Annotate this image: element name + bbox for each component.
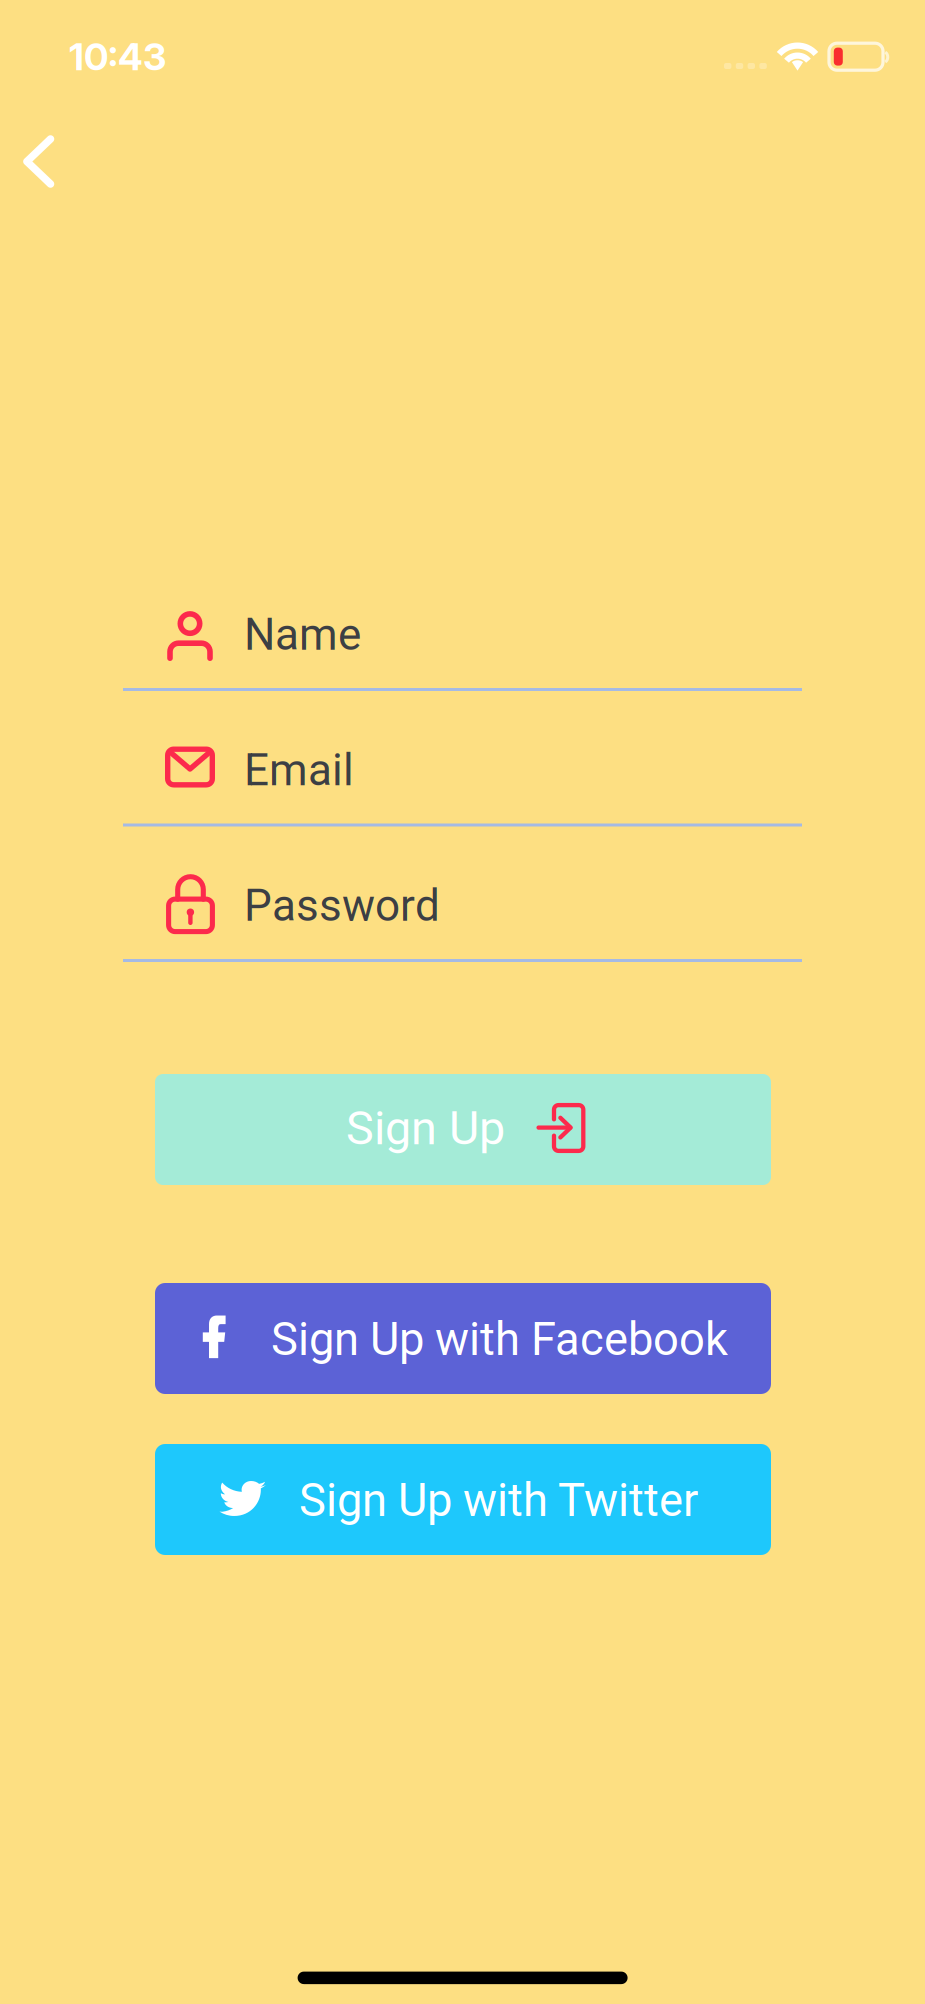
button[interactable]: Sign Up <box>155 1074 771 1185</box>
button[interactable]: Back <box>0 118 96 210</box>
button[interactable]: Sign Up with Twitter <box>155 1444 771 1555</box>
button[interactable]: Sign Up with Facebook <box>155 1283 771 1394</box>
staticText: Email <box>244 744 354 796</box>
staticText: Sign Up <box>346 1101 505 1156</box>
staticText: Sign Up with Facebook <box>271 1313 728 1366</box>
button[interactable]: Email <box>123 691 802 826</box>
staticText: Password <box>244 880 440 932</box>
staticText: Name <box>244 609 361 661</box>
button[interactable]: Password <box>123 827 802 962</box>
staticText: Sign Up with Twitter <box>299 1474 698 1527</box>
staticText: 10:43 <box>69 34 166 79</box>
button[interactable]: Name <box>123 556 802 691</box>
